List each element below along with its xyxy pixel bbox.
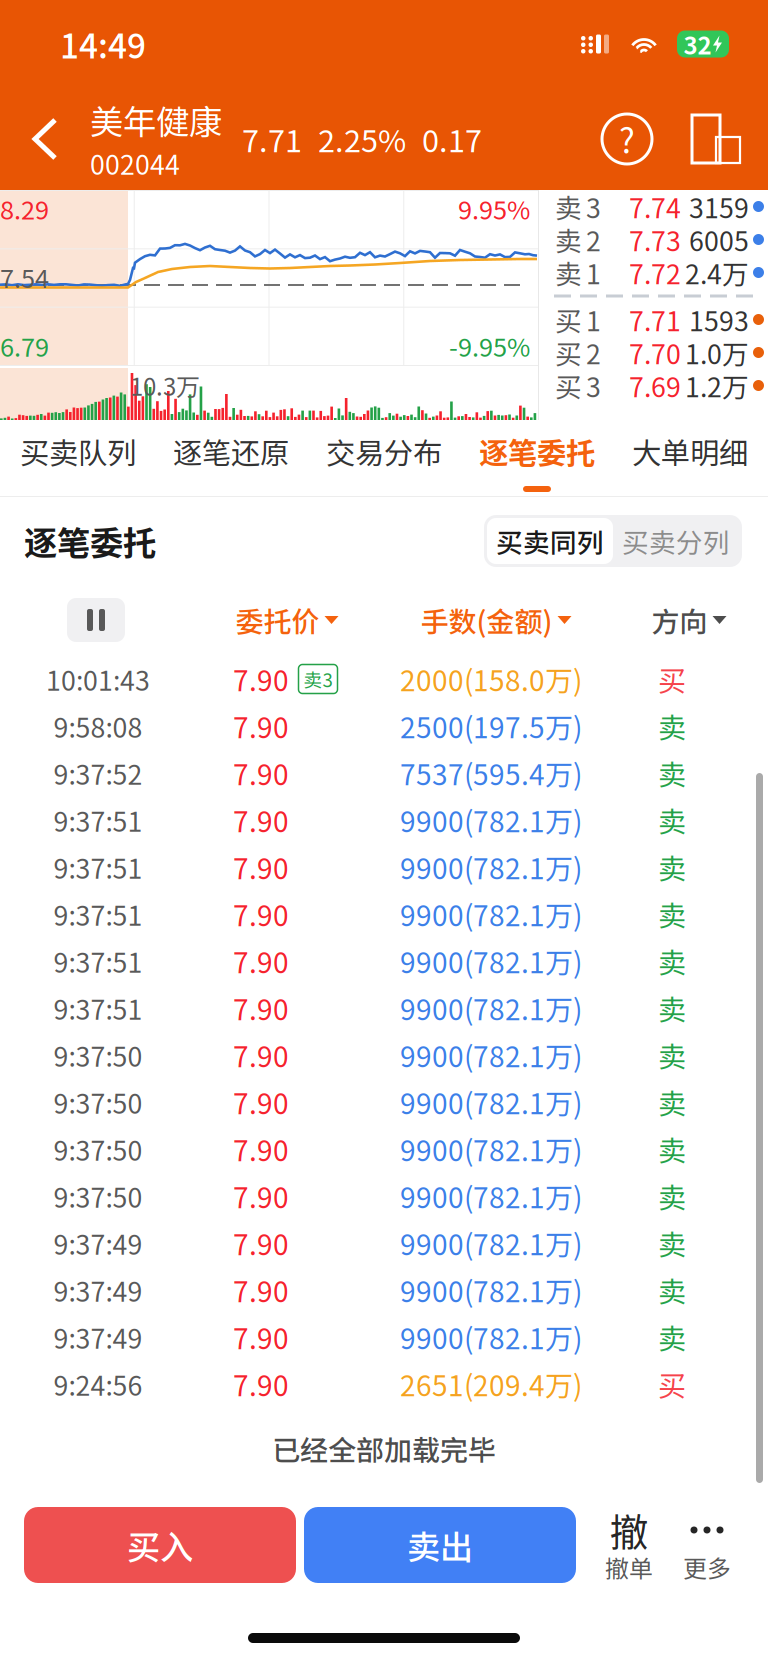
staticText: 9900(782.1万): [400, 988, 582, 1028]
staticText: 3: [586, 366, 601, 405]
button[interactable]: 买卖分列: [613, 518, 739, 564]
staticText: 买: [555, 366, 582, 405]
staticText: 7.90: [233, 894, 289, 934]
staticText: 7.71: [629, 300, 681, 339]
button[interactable]: 买卖同列: [487, 518, 613, 564]
staticText: 更多: [683, 1550, 731, 1584]
staticText: 9:37:51: [53, 801, 142, 839]
staticText: 卖: [555, 253, 582, 292]
staticText: 9900(782.1万): [400, 1082, 582, 1122]
staticText: 卖: [658, 1270, 686, 1310]
staticText: 9900(782.1万): [400, 1035, 582, 1075]
button[interactable]: 卖出: [304, 1507, 576, 1583]
staticText: 9:58:08: [53, 707, 142, 745]
staticText: -9.95%: [449, 327, 530, 364]
staticText: 6.79: [0, 327, 49, 364]
staticText: 14:49: [60, 20, 146, 68]
staticText: 买: [658, 1364, 686, 1404]
button[interactable]: 撤: [590, 1500, 668, 1590]
staticText: 卖: [658, 1223, 686, 1263]
staticText: 9:24:56: [53, 1365, 142, 1403]
staticText: 2.25%: [318, 117, 406, 161]
staticText: 买: [555, 300, 582, 339]
staticText: 方向: [651, 600, 707, 640]
button[interactable]: Back: [24, 108, 70, 170]
button[interactable]: Pause updates: [0, 585, 192, 655]
staticText: 10.3万: [130, 368, 200, 403]
staticText: 10:01:43: [46, 660, 150, 698]
staticText: 7.90: [233, 1176, 289, 1216]
button[interactable]: 买卖队列: [1, 420, 154, 496]
staticText: 2000(158.0万): [400, 659, 582, 699]
staticText: 7.90: [233, 941, 289, 981]
staticText: 7.73: [629, 220, 681, 259]
staticText: 卖: [555, 220, 582, 259]
button[interactable]: 逐笔还原: [154, 420, 307, 496]
button[interactable]: Rotate to landscape: [652, 113, 742, 165]
staticText: 1.2万: [685, 366, 749, 405]
staticText: 0.17: [422, 117, 482, 161]
staticText: 32: [683, 27, 711, 61]
staticText: 9:37:49: [53, 1271, 142, 1309]
staticText: 9900(782.1万): [400, 1317, 582, 1357]
button[interactable]: Help: [602, 114, 652, 164]
staticText: 买: [658, 659, 686, 699]
staticText: ?: [619, 115, 635, 163]
staticText: 9.95%: [458, 190, 530, 227]
staticText: 9:37:50: [53, 1177, 142, 1215]
staticText: 6005: [689, 220, 749, 259]
button[interactable]: 交易分布: [307, 420, 460, 496]
staticText: 9900(782.1万): [400, 941, 582, 981]
staticText: 7.90: [233, 706, 289, 746]
staticText: 9900(782.1万): [400, 1129, 582, 1169]
staticText: 9:37:50: [53, 1130, 142, 1168]
staticText: 9:37:50: [53, 1083, 142, 1121]
staticText: 9900(782.1万): [400, 800, 582, 840]
button[interactable]: 买入: [24, 1507, 296, 1583]
staticText: 买卖分列: [622, 522, 730, 560]
staticText: 7.90: [233, 659, 289, 699]
staticText: 大单明细: [632, 430, 748, 472]
staticText: 买卖同列: [496, 522, 604, 560]
staticText: 2: [586, 220, 601, 259]
button[interactable]: 方向: [610, 585, 768, 655]
staticText: 逐笔还原: [173, 430, 289, 472]
staticText: 卖: [658, 941, 686, 981]
button[interactable]: 手数(金额): [382, 585, 610, 655]
staticText: 9900(782.1万): [400, 1176, 582, 1216]
staticText: 卖3: [303, 665, 332, 692]
staticText: 9:37:50: [53, 1036, 142, 1074]
staticText: 9:37:52: [53, 754, 142, 792]
staticText: 卖: [658, 847, 686, 887]
staticText: 7.54: [0, 259, 49, 295]
staticText: 9:37:49: [53, 1224, 142, 1262]
staticText: 逐笔委托: [479, 430, 595, 472]
staticText: 卖: [658, 1035, 686, 1075]
staticText: 撤单: [605, 1550, 653, 1584]
staticText: 卖: [658, 894, 686, 934]
staticText: 1.0万: [685, 333, 749, 372]
staticText: 委托价: [235, 600, 319, 640]
button[interactable]: 大单明细: [613, 420, 766, 496]
staticText: 卖: [555, 187, 582, 226]
staticText: 美年健康: [90, 96, 222, 144]
staticText: 9:37:51: [53, 895, 142, 933]
staticText: 交易分布: [326, 430, 442, 472]
staticText: 7.90: [233, 1035, 289, 1075]
staticText: 卖: [658, 800, 686, 840]
staticText: 买入: [127, 1521, 193, 1569]
staticText: 卖: [658, 1082, 686, 1122]
staticText: 7537(595.4万): [400, 753, 582, 793]
staticText: 2500(197.5万): [400, 706, 582, 746]
staticText: 3: [586, 187, 601, 226]
button[interactable]: 逐笔委托: [460, 420, 613, 496]
button[interactable]: 委托价: [192, 585, 382, 655]
staticText: 7.71: [242, 117, 302, 161]
staticText: 2: [586, 333, 601, 372]
staticText: 7.90: [233, 1223, 289, 1263]
staticText: 1: [586, 300, 601, 339]
button[interactable]: 更多: [668, 1500, 746, 1590]
staticText: 7.90: [233, 800, 289, 840]
staticText: 已经全部加载完毕: [272, 1428, 496, 1469]
staticText: 7.74: [629, 187, 681, 226]
